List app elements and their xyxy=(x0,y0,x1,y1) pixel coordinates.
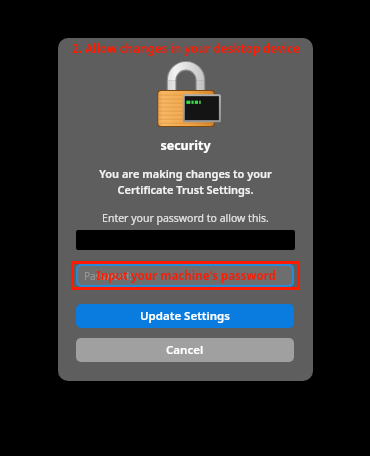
staticText: security xyxy=(160,137,211,154)
staticText: Password: xyxy=(84,269,132,283)
staticText: Input your machine's password xyxy=(96,268,276,284)
button[interactable]: Cancel xyxy=(76,338,294,362)
staticText: 2. Allow changes in your desktop device xyxy=(72,41,300,57)
staticText: Enter your password to allow this. xyxy=(102,211,269,225)
other: Security lock xyxy=(150,63,222,133)
staticText: You are making changes to your Certifica… xyxy=(99,166,272,197)
button[interactable]: Update Settings xyxy=(76,304,294,328)
button[interactable]: Password: xyxy=(78,266,292,285)
staticText: Cancel xyxy=(166,342,204,358)
staticText: Update Settings xyxy=(140,308,230,324)
